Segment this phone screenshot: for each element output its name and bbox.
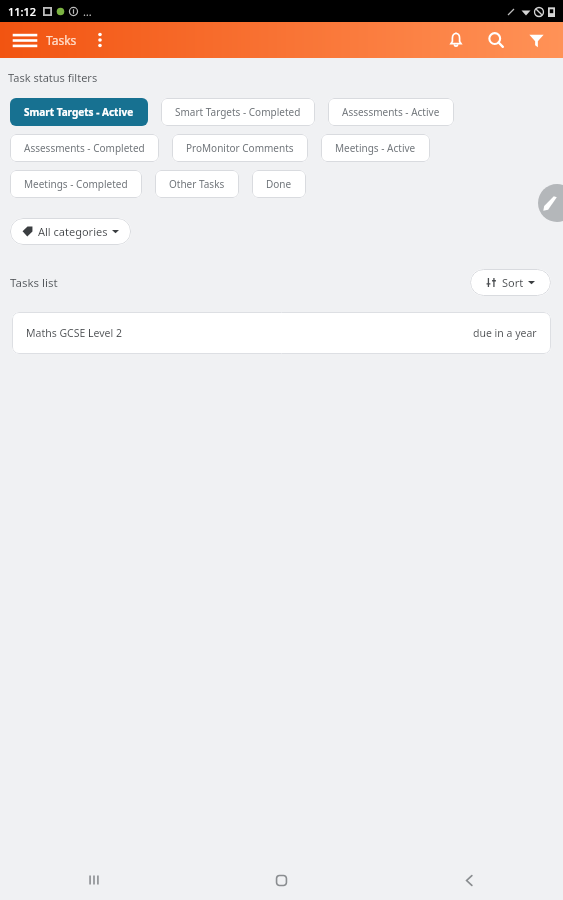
staticText: 11:12 (8, 4, 37, 19)
staticText: … (83, 4, 92, 19)
staticText: Maths GCSE Level 2 (26, 326, 122, 340)
staticText: Meetings - Active (335, 141, 416, 155)
staticText: Done (266, 177, 292, 191)
button[interactable]: Recents (0, 860, 187, 900)
button[interactable]: Assessments - Completed (10, 134, 159, 162)
button[interactable]: Smart Targets - Completed (161, 98, 315, 126)
staticText: Assessments - Completed (24, 141, 145, 155)
staticText: due in a year (473, 326, 537, 340)
button[interactable]: Search (479, 23, 513, 57)
staticText: ProMonitor Comments (186, 141, 294, 155)
staticText: Task status filters (8, 70, 98, 85)
button[interactable]: Menu (10, 25, 40, 55)
button[interactable]: Edit (538, 184, 563, 222)
staticText: Assessments - Active (342, 105, 440, 119)
button[interactable]: ProMonitor Comments (172, 134, 308, 162)
button[interactable]: Meetings - Completed (10, 170, 142, 198)
button[interactable]: Back (375, 860, 563, 900)
button[interactable]: Assessments - Active (328, 98, 454, 126)
staticText: Tasks list (10, 275, 58, 291)
button[interactable]: Done (252, 170, 306, 198)
staticText: Meetings - Completed (24, 177, 128, 191)
staticText: Smart Targets - Completed (175, 105, 301, 119)
staticText: Tasks (46, 32, 77, 48)
button[interactable]: All categories (10, 218, 131, 245)
staticText: All categories (38, 224, 108, 239)
button[interactable]: Filter (519, 23, 553, 57)
button[interactable]: Other Tasks (155, 170, 239, 198)
staticText: Smart Targets - Active (24, 105, 134, 119)
button[interactable]: Home (187, 860, 375, 900)
button[interactable]: Maths GCSE Level 2 (12, 312, 551, 354)
staticText: Sort (502, 275, 524, 290)
button[interactable]: Notifications (439, 23, 473, 57)
button[interactable]: More options (89, 29, 111, 51)
button[interactable]: Sort (470, 269, 551, 296)
button[interactable]: Meetings - Active (321, 134, 430, 162)
staticText: Other Tasks (169, 177, 225, 191)
button[interactable]: Smart Targets - Active (10, 98, 148, 126)
